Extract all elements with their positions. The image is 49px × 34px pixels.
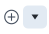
button[interactable]: Add [0, 0, 23, 34]
button[interactable]: More options [23, 5, 47, 28]
